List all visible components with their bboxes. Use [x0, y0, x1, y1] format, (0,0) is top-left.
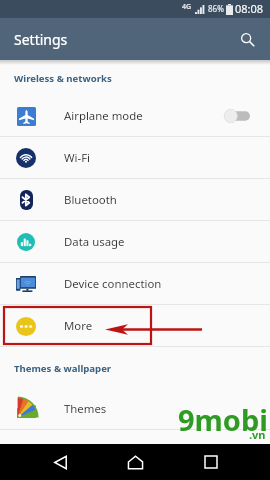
button[interactable]: Back — [22, 444, 98, 480]
staticText: Airplane mode — [64, 108, 143, 124]
button[interactable]: Data usage — [0, 221, 270, 263]
staticText: More — [64, 318, 93, 334]
staticText: Wireless & networks — [14, 72, 112, 85]
button[interactable]: Themes — [0, 388, 270, 430]
button[interactable]: Search — [231, 23, 263, 55]
button[interactable]: Home — [98, 444, 173, 480]
staticText: .vn — [249, 427, 266, 442]
button[interactable]: Recent apps — [173, 444, 248, 480]
staticText: Bluetooth — [64, 192, 117, 208]
staticText: Data usage — [64, 234, 125, 250]
button[interactable]: Wi-Fi — [0, 137, 270, 179]
button[interactable]: Device connection — [0, 263, 270, 305]
staticText: 86% — [208, 3, 224, 14]
staticText: 9mobi — [178, 400, 268, 439]
button[interactable]: More — [0, 305, 270, 347]
staticText: Themes & wallpaper — [14, 362, 112, 375]
staticText: 08:08 — [235, 1, 264, 16]
staticText: 4G — [182, 2, 192, 12]
button[interactable]: Airplane mode — [0, 95, 270, 137]
staticText: Themes — [64, 401, 107, 417]
staticText: Device connection — [64, 276, 162, 292]
button[interactable]: Bluetooth — [0, 179, 270, 221]
staticText: Wi-Fi — [64, 150, 91, 166]
staticText: Settings — [14, 30, 68, 49]
